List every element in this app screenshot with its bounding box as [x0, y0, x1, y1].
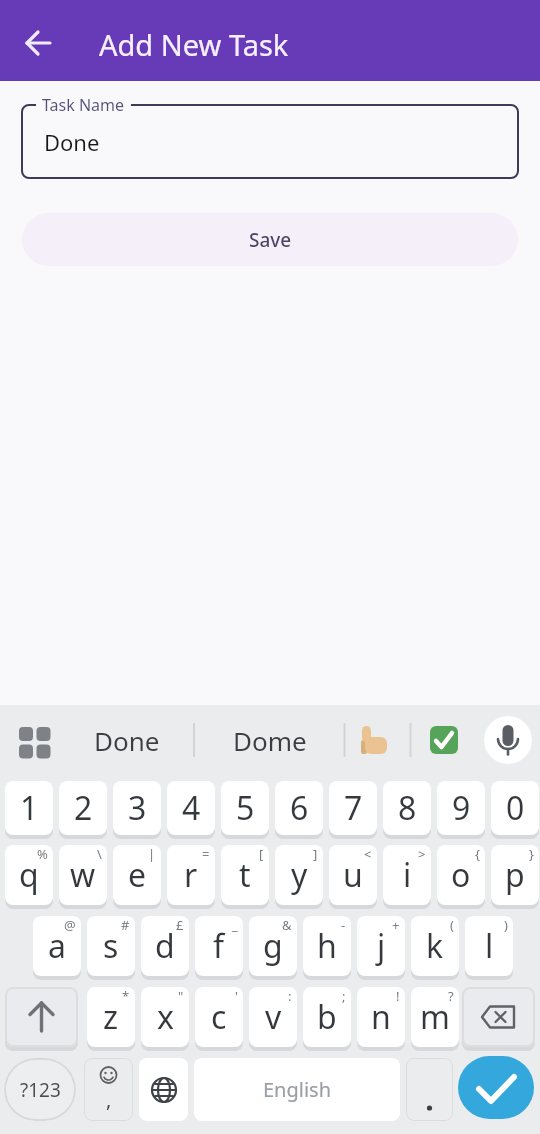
button[interactable]: 7: [329, 781, 377, 835]
button[interactable]: q: [5, 845, 53, 905]
button[interactable]: o: [437, 845, 485, 905]
staticText: x: [157, 995, 174, 1039]
button[interactable]: Save: [22, 213, 518, 266]
staticText: {: [475, 845, 480, 863]
staticText: m: [420, 995, 450, 1039]
staticText: t: [239, 853, 251, 897]
button[interactable]: [139, 1058, 188, 1121]
button[interactable]: r: [167, 845, 215, 905]
staticText: [: [259, 845, 264, 863]
staticText: s: [103, 924, 119, 968]
button[interactable]: [426, 722, 462, 758]
button[interactable]: 0: [491, 781, 539, 835]
button[interactable]: x: [141, 987, 189, 1047]
button[interactable]: f: [195, 916, 243, 976]
staticText: j: [377, 924, 386, 968]
staticText: <: [364, 845, 372, 863]
button[interactable]: g: [249, 916, 297, 976]
button[interactable]: 3: [113, 781, 161, 835]
staticText: v: [265, 995, 282, 1039]
staticText: |: [148, 845, 156, 863]
button[interactable]: c: [195, 987, 243, 1047]
button[interactable]: 5: [221, 781, 269, 835]
button[interactable]: k: [411, 916, 459, 976]
button[interactable]: Dome: [222, 705, 318, 775]
button[interactable]: n: [357, 987, 405, 1047]
button[interactable]: u: [329, 845, 377, 905]
button[interactable]: English: [194, 1058, 400, 1121]
staticText: ?: [448, 987, 454, 1005]
staticText: (: [450, 916, 454, 934]
button[interactable]: s: [87, 916, 135, 976]
staticText: Task Name: [42, 94, 125, 116]
button[interactable]: 8: [383, 781, 431, 835]
staticText: ]: [313, 845, 318, 863]
staticText: }: [529, 845, 534, 863]
staticText: a: [48, 924, 66, 968]
button[interactable]: [12, 720, 58, 766]
staticText: y: [291, 853, 308, 897]
staticText: u: [343, 853, 363, 897]
button[interactable]: v: [249, 987, 297, 1047]
staticText: \: [97, 845, 102, 863]
button[interactable]: ,: [84, 1058, 133, 1121]
button[interactable]: w: [59, 845, 107, 905]
staticText: _: [232, 916, 238, 934]
button[interactable]: 4: [167, 781, 215, 835]
button[interactable]: [5, 987, 78, 1047]
staticText: n: [371, 995, 391, 1039]
button[interactable]: a: [33, 916, 81, 976]
staticText: Dome: [233, 723, 307, 758]
staticText: Done: [44, 127, 100, 157]
button[interactable]: ?123: [4, 1058, 76, 1121]
staticText: +: [392, 916, 400, 934]
button[interactable]: Done: [79, 705, 175, 775]
staticText: ?123: [20, 1077, 61, 1103]
button[interactable]: [458, 1056, 534, 1119]
button[interactable]: 9: [437, 781, 485, 835]
button[interactable]: 1: [5, 781, 53, 835]
staticText: #: [121, 916, 130, 934]
button[interactable]: h: [303, 916, 351, 976]
staticText: o: [451, 853, 471, 897]
staticText: ,: [106, 1086, 112, 1113]
button[interactable]: p: [491, 845, 539, 905]
button[interactable]: 6: [275, 781, 323, 835]
button[interactable]: m: [411, 987, 459, 1047]
button[interactable]: [406, 1058, 453, 1121]
staticText: 1: [20, 786, 39, 830]
button[interactable]: d: [141, 916, 189, 976]
staticText: ": [178, 987, 184, 1005]
staticText: 8: [398, 786, 417, 830]
button[interactable]: i: [383, 845, 431, 905]
staticText: >: [418, 845, 426, 863]
staticText: English: [263, 1076, 332, 1103]
staticText: 9: [452, 786, 471, 830]
button[interactable]: [462, 987, 535, 1047]
staticText: =: [202, 845, 210, 863]
button[interactable]: t: [221, 845, 269, 905]
staticText: :: [288, 987, 292, 1005]
button[interactable]: [21, 104, 519, 179]
staticText: %: [37, 845, 48, 863]
staticText: @: [64, 916, 76, 934]
staticText: !: [396, 987, 400, 1005]
button[interactable]: y: [275, 845, 323, 905]
staticText: 2: [74, 786, 93, 830]
staticText: &: [282, 916, 292, 934]
button[interactable]: e: [113, 845, 161, 905]
button[interactable]: [22, 26, 56, 60]
staticText: ): [504, 916, 508, 934]
button[interactable]: [484, 716, 532, 764]
button[interactable]: z: [87, 987, 135, 1047]
staticText: 4: [182, 786, 201, 830]
button[interactable]: 2: [59, 781, 107, 835]
button[interactable]: b: [303, 987, 351, 1047]
staticText: c: [211, 995, 227, 1039]
staticText: f: [213, 924, 225, 968]
button[interactable]: [350, 705, 402, 775]
button[interactable]: j: [357, 916, 405, 976]
staticText: -: [341, 916, 346, 934]
button[interactable]: l: [465, 916, 513, 976]
staticText: £: [176, 916, 184, 934]
